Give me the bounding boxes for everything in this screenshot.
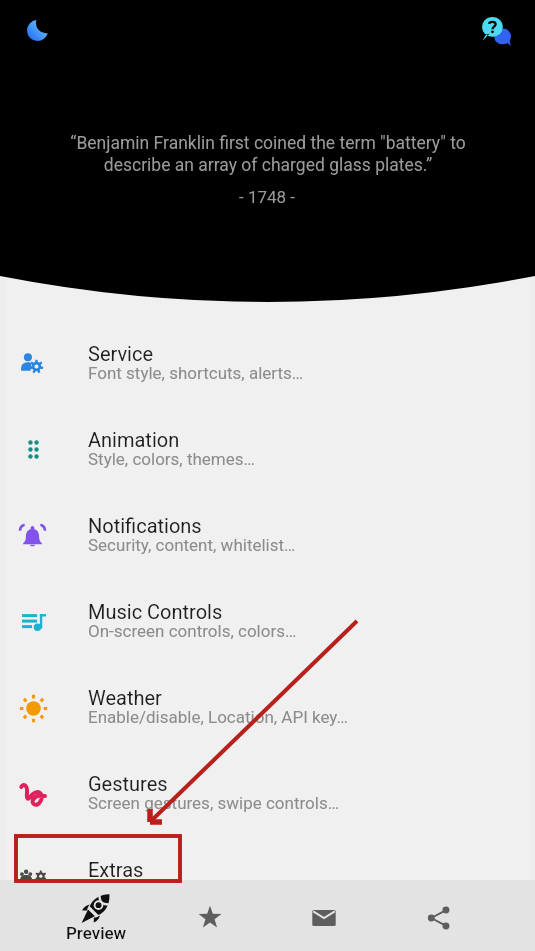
staticText: Font style, shortcuts, alerts…	[88, 363, 304, 383]
staticText: Music Controls	[88, 600, 223, 623]
staticText: Screen gestures, swipe controls…	[88, 793, 340, 813]
staticText: Security, content, whitelist…	[88, 535, 296, 555]
staticText: Extras	[88, 858, 144, 881]
staticText: Service	[88, 342, 154, 365]
staticText: - 1748 -	[239, 187, 296, 207]
staticText: Style, colors, themes…	[88, 449, 255, 469]
button[interactable]: Notifications	[0, 483, 535, 569]
staticText: “Benjamin Franklin first coined the term…	[68, 133, 468, 176]
button[interactable]: Extras	[0, 827, 535, 913]
button[interactable]: Mail	[267, 880, 381, 951]
staticText: Weather	[88, 686, 162, 709]
staticText: Notifications	[88, 514, 202, 537]
button[interactable]: Favorites	[153, 880, 267, 951]
button[interactable]: Music Controls	[0, 569, 535, 655]
staticText: Preview	[66, 923, 127, 943]
button[interactable]: Preview	[39, 880, 153, 951]
button[interactable]: Service	[0, 311, 535, 397]
button[interactable]: Weather	[0, 655, 535, 741]
button[interactable]: Share	[382, 880, 496, 951]
button[interactable]: Gestures	[0, 741, 535, 827]
staticText: Enable/disable, Location, API key…	[88, 707, 348, 727]
button[interactable]: Animation	[0, 397, 535, 483]
button[interactable]: Help	[471, 6, 521, 56]
button[interactable]: Night mode	[15, 8, 59, 52]
staticText: Animation	[88, 428, 180, 451]
staticText: Gestures	[88, 772, 168, 795]
staticText: On-screen controls, colors…	[88, 621, 297, 641]
